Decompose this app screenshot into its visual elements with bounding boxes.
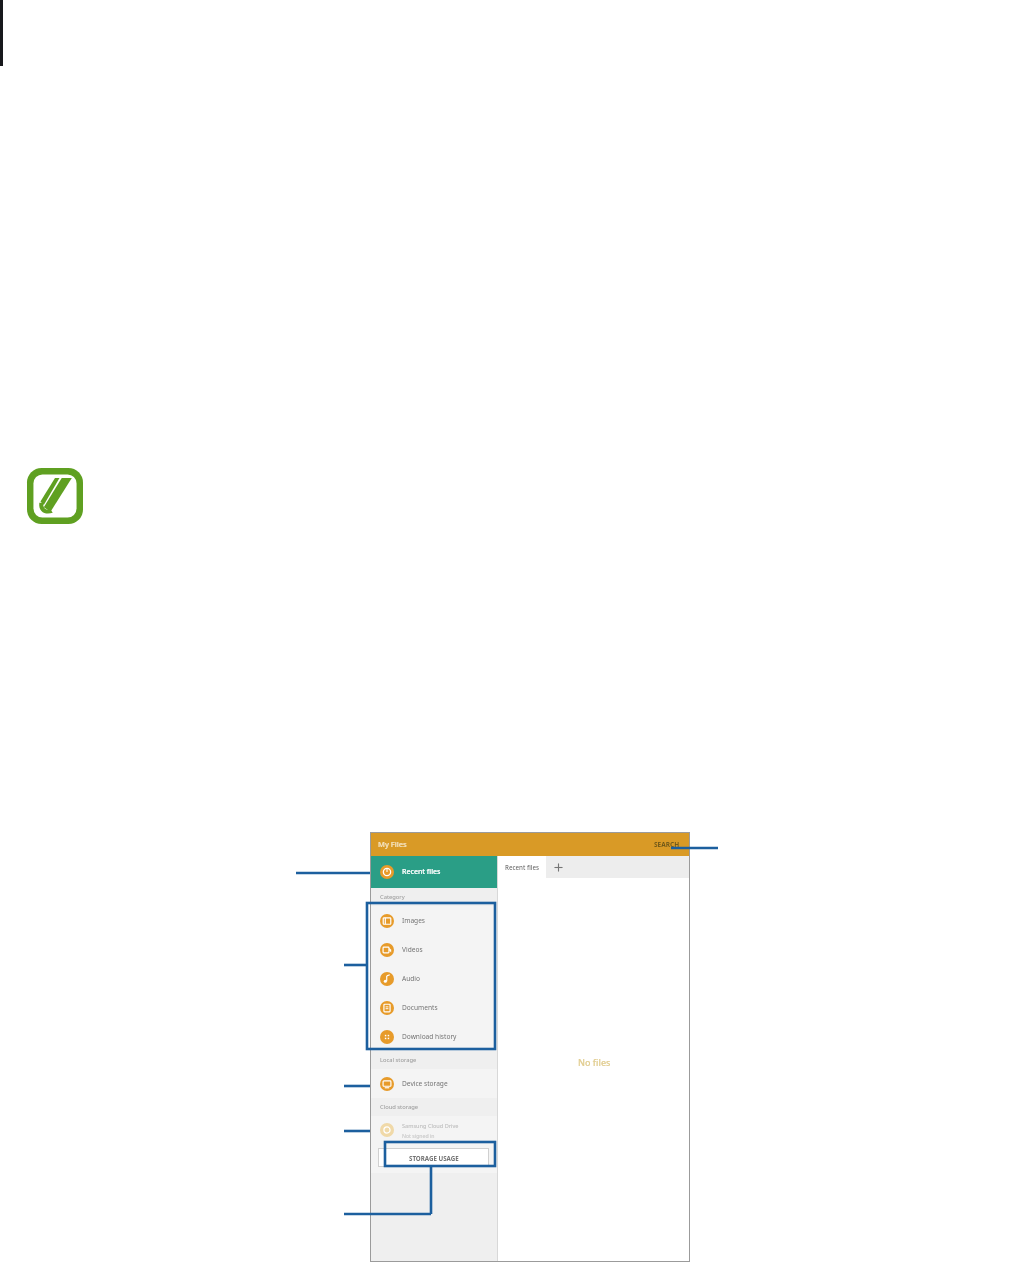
staticText: Cloud storage: [380, 1103, 419, 1111]
staticText: SEARCH: [654, 840, 680, 849]
button[interactable]: Videos: [370, 935, 497, 964]
staticText: STORAGE USAGE: [409, 1154, 459, 1162]
button[interactable]: Recent files: [498, 856, 546, 878]
other: Note: [27, 468, 83, 524]
button[interactable]: Samsung Cloud Drive: [370, 1116, 497, 1144]
button[interactable]: Documents: [370, 993, 497, 1022]
staticText: Recent files: [402, 867, 441, 877]
button[interactable]: Add tab: [546, 856, 570, 878]
staticText: Local storage: [380, 1056, 417, 1064]
staticText: My Files: [378, 839, 407, 849]
staticText: Documents: [402, 1003, 438, 1012]
button[interactable]: My Files: [378, 839, 407, 849]
button[interactable]: SEARCH: [654, 840, 680, 849]
staticText: Category: [380, 893, 405, 901]
staticText: Device storage: [402, 1079, 448, 1088]
staticText: Images: [402, 916, 426, 925]
staticText: Not signed in: [402, 1132, 435, 1139]
staticText: Download history: [402, 1032, 457, 1041]
staticText: Videos: [402, 945, 423, 954]
button[interactable]: Recent files: [370, 856, 497, 888]
button[interactable]: Device storage: [370, 1069, 497, 1098]
staticText: Recent files: [505, 863, 540, 871]
button[interactable]: STORAGE USAGE: [378, 1148, 489, 1167]
staticText: No files: [578, 1056, 611, 1068]
button[interactable]: Download history: [370, 1022, 497, 1051]
staticText: Samsung Cloud Drive: [402, 1122, 459, 1130]
button[interactable]: Images: [370, 906, 497, 935]
staticText: Audio: [402, 974, 421, 983]
button[interactable]: Audio: [370, 964, 497, 993]
